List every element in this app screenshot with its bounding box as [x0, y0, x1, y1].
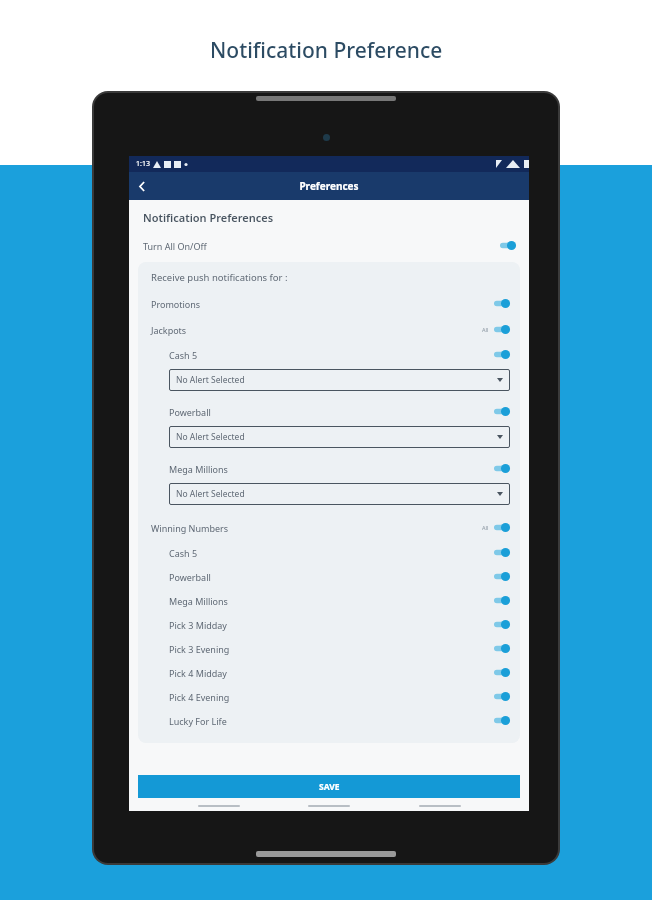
button[interactable]: Pick 4 Evening	[144, 689, 514, 704]
staticText: No Alert Selected	[176, 488, 245, 500]
button[interactable]: No Alert Selected	[169, 426, 510, 448]
button[interactable]: Pick 3 Midday	[144, 617, 514, 632]
button[interactable]: Nav button	[308, 805, 350, 807]
staticText: All	[482, 524, 489, 531]
button[interactable]: Powerball	[144, 569, 514, 584]
button[interactable]: Back	[129, 173, 155, 199]
staticText: Mega Millions	[169, 595, 228, 607]
staticText: Winning Numbers	[151, 522, 229, 534]
staticText: No Alert Selected	[176, 374, 245, 386]
staticText: Preferences	[299, 179, 359, 193]
staticText: Powerball	[169, 571, 211, 583]
button[interactable]: Turn All On/Off	[138, 238, 520, 253]
button[interactable]: Pick 3 Evening	[144, 641, 514, 656]
staticText: All	[482, 326, 489, 333]
staticText: SAVE	[319, 781, 340, 793]
staticText: Cash 5	[169, 349, 198, 361]
staticText: Lucky For Life	[169, 715, 227, 727]
staticText: 1:13	[136, 159, 150, 169]
button[interactable]: Nav button	[419, 805, 461, 807]
button[interactable]: Mega Millions	[144, 461, 514, 476]
staticText: Promotions	[151, 298, 201, 310]
staticText: Pick 3 Midday	[169, 619, 227, 631]
button[interactable]: Mega Millions	[144, 593, 514, 608]
button[interactable]: Powerball	[144, 404, 514, 419]
button[interactable]: No Alert Selected	[169, 483, 510, 505]
staticText: No Alert Selected	[176, 431, 245, 443]
staticText: Turn All On/Off	[143, 240, 207, 252]
staticText: Cash 5	[169, 547, 198, 559]
button[interactable]: Cash 5	[144, 545, 514, 560]
staticText: Jackpots	[151, 324, 187, 336]
button[interactable]: Pick 4 Midday	[144, 665, 514, 680]
staticText: Pick 4 Evening	[169, 691, 230, 703]
button[interactable]: Lucky For Life	[144, 713, 514, 728]
button[interactable]: SAVE	[138, 775, 520, 798]
staticText: Pick 3 Evening	[169, 643, 230, 655]
staticText: Mega Millions	[169, 463, 228, 475]
staticText: Powerball	[169, 406, 211, 418]
staticText: Notification Preference	[210, 36, 443, 65]
button[interactable]: Promotions	[144, 296, 514, 311]
button[interactable]: Cash 5	[144, 347, 514, 362]
staticText: Notification Preferences	[143, 210, 274, 225]
staticText: Receive push notifications for :	[151, 271, 288, 284]
button[interactable]: Winning Numbers	[144, 520, 514, 535]
staticText: Pick 4 Midday	[169, 667, 227, 679]
button[interactable]: Jackpots	[144, 322, 514, 337]
button[interactable]: No Alert Selected	[169, 369, 510, 391]
button[interactable]: Nav button	[198, 805, 240, 807]
